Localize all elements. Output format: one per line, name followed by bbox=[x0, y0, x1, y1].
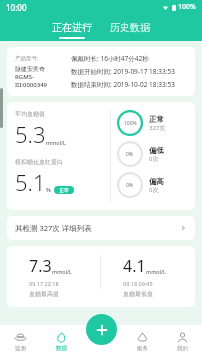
staticText: 0% bbox=[126, 182, 134, 189]
staticText: 0次 bbox=[149, 155, 159, 163]
staticText: 平均血糖值 bbox=[15, 110, 45, 118]
button[interactable]: 监测 bbox=[0, 325, 41, 359]
staticText: 正常 bbox=[149, 115, 164, 124]
button[interactable]: 其检测 327次 详细列表 bbox=[7, 216, 195, 240]
button[interactable]: 正在进行 bbox=[48, 15, 96, 41]
staticText: 脉健安美奇RGMS-III:0000349 bbox=[15, 65, 63, 89]
staticText: 0% bbox=[126, 151, 134, 158]
staticText: 327次 bbox=[149, 124, 166, 132]
staticText: 血糖最高值 bbox=[29, 290, 59, 298]
staticText: 5.1 bbox=[15, 167, 46, 197]
staticText: 数据 bbox=[56, 345, 67, 352]
button[interactable]: 历史数据 bbox=[106, 15, 154, 41]
button[interactable]: 0% bbox=[117, 172, 164, 198]
button[interactable]: 0% bbox=[117, 141, 164, 167]
staticText: 4.1 bbox=[123, 255, 146, 277]
staticText: 数据开始时间: 2019-09-17 18:33:53 bbox=[71, 67, 175, 76]
staticText: 我的 bbox=[177, 345, 188, 352]
staticText: 数据结束时间: 2019-10-02 18:33:53 bbox=[71, 80, 175, 89]
staticText: 09.18 09:45 bbox=[123, 280, 153, 287]
button[interactable]: 服务 bbox=[122, 325, 162, 359]
staticText: 其检测 327次 详细列表 bbox=[15, 223, 92, 233]
staticText: 正常 bbox=[59, 187, 69, 193]
staticText: 7.3 bbox=[29, 255, 52, 277]
staticText: 服务 bbox=[137, 345, 148, 352]
staticText: 监测 bbox=[15, 345, 26, 352]
staticText: mmol/L bbox=[52, 268, 72, 275]
button[interactable]: 100% bbox=[117, 110, 166, 136]
staticText: 偏高 bbox=[149, 177, 164, 186]
staticText: % bbox=[46, 186, 51, 194]
staticText: 偏低 bbox=[149, 146, 164, 155]
staticText: 产品型号: bbox=[15, 54, 39, 62]
staticText: 血糖最低值 bbox=[123, 290, 153, 298]
staticText: 0次 bbox=[149, 186, 159, 194]
button[interactable]: Add bbox=[86, 314, 117, 345]
staticText: 100% bbox=[124, 120, 137, 127]
staticText: 历史数据 bbox=[110, 21, 150, 34]
staticText: 佩戴时长: 16小时47分42秒 bbox=[71, 54, 149, 63]
button[interactable]: 我的 bbox=[162, 325, 202, 359]
staticText: 09.17 22:18 bbox=[29, 280, 59, 287]
staticText: 100% bbox=[178, 2, 196, 12]
button[interactable]: 7.3 bbox=[7, 255, 100, 298]
button[interactable]: 产品型号: bbox=[7, 47, 195, 96]
button[interactable]: 数据 bbox=[41, 325, 82, 359]
button[interactable]: 4.1 bbox=[101, 255, 195, 298]
staticText: 正在进行 bbox=[52, 21, 92, 34]
staticText: mmol/L bbox=[46, 139, 66, 146]
staticText: 5.3 bbox=[15, 119, 46, 149]
staticText: mmol/L bbox=[146, 268, 166, 275]
staticText: 10:00 bbox=[6, 2, 27, 13]
staticText: 模拟糖化血红蛋白 bbox=[15, 158, 63, 166]
